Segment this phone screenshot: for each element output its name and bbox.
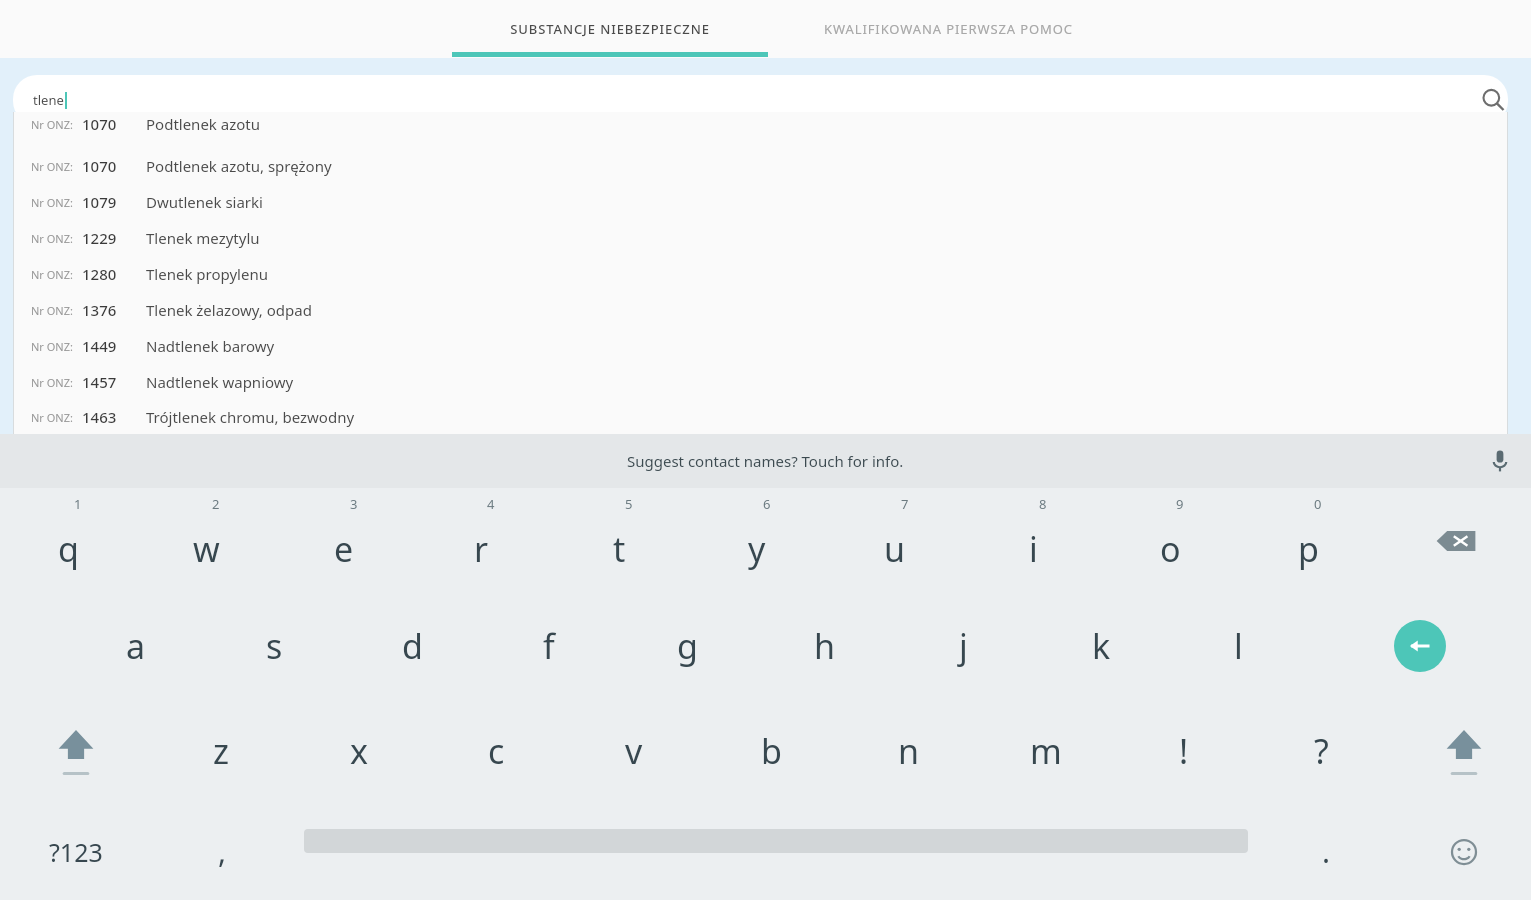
staticText: Nr ONZ: [31,195,73,210]
staticText: f [543,623,555,669]
button[interactable]: a [74,593,198,698]
button[interactable]: KWALIFIKOWANA PIERWSZA POMOC [768,0,1128,58]
staticText: Nadtlenek barowy [146,336,275,356]
button[interactable]: b [709,698,833,803]
button[interactable]: ! [1122,698,1246,803]
staticText: r [474,526,489,572]
staticText: q [58,526,79,572]
button[interactable]: k [1039,593,1163,698]
staticText: ? [1314,728,1329,774]
staticText: 4 [487,495,495,513]
button[interactable]: s [212,593,336,698]
staticText: m [1030,728,1062,774]
button[interactable]: 4 [419,488,543,593]
button[interactable]: Suggest contact names? Touch for info. [0,434,1531,488]
button[interactable]: m [984,698,1108,803]
button[interactable]: Enter [1358,593,1482,698]
button[interactable]: 1 [6,488,130,593]
button[interactable]: Search [1468,75,1508,125]
staticText: t [613,526,626,572]
button[interactable]: g [625,593,749,698]
staticText: Nr ONZ: [31,375,73,390]
staticText: 1449 [82,336,117,356]
staticText: . [1322,831,1331,872]
staticText: Tlenek propylenu [146,264,268,284]
button[interactable]: Emoji [1404,803,1524,900]
button[interactable]: Nr ONZ: [13,256,1508,292]
staticText: c [488,728,505,774]
staticText: w [193,526,220,572]
button[interactable]: c [434,698,558,803]
button[interactable]: Nr ONZ: [13,292,1508,328]
staticText: Podtlenek azotu [146,114,260,134]
staticText: , [218,831,227,872]
button[interactable]: Nr ONZ: [13,328,1508,364]
button[interactable]: 0 [1246,488,1370,593]
button[interactable]: h [763,593,887,698]
button[interactable]: Shift [1402,698,1526,803]
staticText: Podtlenek azotu, sprężony [146,156,332,176]
button[interactable]: Nr ONZ: [13,148,1508,184]
staticText: Nr ONZ: [31,159,73,174]
button[interactable]: , [162,803,282,900]
button[interactable]: 6 [695,488,819,593]
button[interactable]: Nr ONZ: [13,400,1508,434]
button[interactable]: Voice input [1473,434,1527,488]
button[interactable]: f [487,593,611,698]
button[interactable]: Shift [14,698,138,803]
staticText: KWALIFIKOWANA PIERWSZA POMOC [824,20,1073,38]
staticText: x [350,728,368,774]
button[interactable]: 3 [282,488,406,593]
staticText: Trójtlenek chromu, bezwodny [146,407,355,427]
staticText: 1070 [82,114,117,134]
button[interactable]: Nr ONZ: [13,106,1508,142]
button[interactable]: 9 [1108,488,1232,593]
staticText: Nr ONZ: [31,231,73,246]
staticText: l [1234,623,1243,669]
staticText: tlene [33,91,64,109]
staticText: 1229 [82,228,117,248]
staticText: 1079 [82,192,117,212]
staticText: 1463 [82,407,117,427]
button[interactable]: n [847,698,971,803]
button[interactable]: Nr ONZ: [13,220,1508,256]
staticText: j [959,623,968,669]
staticText: 1376 [82,300,117,320]
staticText: o [1160,526,1181,572]
staticText: i [1029,526,1038,572]
button[interactable]: Backspace [1394,488,1518,593]
button[interactable]: . [1266,803,1386,900]
staticText: u [884,526,906,572]
button[interactable]: 5 [557,488,681,593]
button[interactable]: 8 [971,488,1095,593]
button[interactable]: j [901,593,1025,698]
button[interactable]: Nr ONZ: [13,184,1508,220]
staticText: e [334,526,354,572]
button[interactable]: Nr ONZ: [13,364,1508,400]
staticText: Nr ONZ: [31,303,73,318]
staticText: 7 [901,495,909,513]
staticText: d [402,623,423,669]
button[interactable]: 2 [144,488,268,593]
button[interactable]: 7 [833,488,957,593]
button[interactable]: l [1176,593,1300,698]
button[interactable]: SUBSTANCJE NIEBEZPIECZNE [452,0,768,58]
staticText: n [898,728,920,774]
staticText: 2 [212,495,220,513]
button[interactable]: x [297,698,421,803]
staticText: Nr ONZ: [31,339,73,354]
button[interactable]: d [350,593,474,698]
staticText: SUBSTANCJE NIEBEZPIECZNE [510,20,710,38]
button[interactable]: ?123 [14,803,138,900]
staticText: s [266,623,283,669]
button[interactable]: z [159,698,283,803]
staticText: a [126,623,146,669]
staticText: h [814,623,836,669]
staticText: Nadtlenek wapniowy [146,372,294,392]
button[interactable]: ? [1259,698,1383,803]
button[interactable]: v [572,698,696,803]
staticText: 6 [763,495,771,513]
button[interactable]: tlene [13,75,1508,125]
staticText: 1457 [82,372,117,392]
